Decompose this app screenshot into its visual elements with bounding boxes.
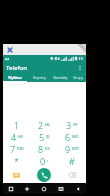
staticText: 9: [65, 143, 71, 155]
button[interactable]: Close: [6, 46, 14, 54]
button[interactable]: 3: [58, 119, 86, 131]
button[interactable]: Wybierz numer: [3, 73, 27, 82]
staticText: JKL: [46, 135, 50, 139]
button[interactable]: Back: [69, 183, 86, 194]
button[interactable]: 7: [3, 143, 30, 155]
staticText: 3: [66, 119, 72, 131]
staticText: DEF: [73, 123, 78, 127]
staticText: #: [69, 155, 75, 167]
staticText: 2: [38, 119, 44, 131]
staticText: Wybierz numer: [3, 75, 27, 80]
button[interactable]: Move: [19, 183, 35, 194]
staticText: GHI: [18, 135, 23, 139]
staticText: Rejestry połączeń: [27, 75, 52, 80]
button[interactable]: 1: [3, 119, 30, 131]
staticText: Kontakty: [53, 75, 68, 80]
staticText: MNO: [72, 135, 79, 139]
button[interactable]: #: [58, 155, 86, 167]
button[interactable]: *: [3, 155, 30, 167]
staticText: 8: [38, 143, 44, 155]
button[interactable]: More options: [76, 64, 84, 72]
button[interactable]: Recents: [3, 183, 19, 194]
button[interactable]: 4: [3, 131, 30, 143]
staticText: Telefon: [6, 64, 28, 72]
staticText: 5: [39, 131, 45, 143]
staticText: TUV: [45, 147, 50, 151]
staticText: +: [47, 159, 49, 163]
button[interactable]: Home: [35, 183, 52, 194]
button[interactable]: Keyboard: [52, 183, 69, 194]
staticText: 4: [11, 131, 17, 143]
button[interactable]: 8: [30, 143, 58, 155]
button[interactable]: Backspace: [58, 167, 86, 183]
button[interactable]: Send message: [3, 167, 30, 183]
button[interactable]: 2: [30, 119, 58, 131]
button[interactable]: Grupy: [69, 73, 86, 82]
button[interactable]: Rejestry połączeń: [27, 73, 52, 82]
button[interactable]: 5: [30, 131, 58, 143]
button[interactable]: 6: [58, 131, 86, 143]
staticText: Grupy: [73, 75, 83, 80]
button[interactable]: 9: [58, 143, 86, 155]
button[interactable]: 0: [30, 155, 58, 167]
button[interactable]: Kontakty: [52, 73, 69, 82]
staticText: ABC: [45, 123, 51, 127]
staticText: 0: [40, 155, 46, 167]
staticText: 7: [10, 143, 16, 155]
staticText: 6: [65, 131, 71, 143]
staticText: 1: [14, 119, 20, 131]
staticText: *: [14, 155, 19, 167]
button[interactable]: Call: [37, 168, 51, 182]
staticText: PQRS: [17, 147, 24, 151]
staticText: WXYZ: [72, 147, 80, 151]
